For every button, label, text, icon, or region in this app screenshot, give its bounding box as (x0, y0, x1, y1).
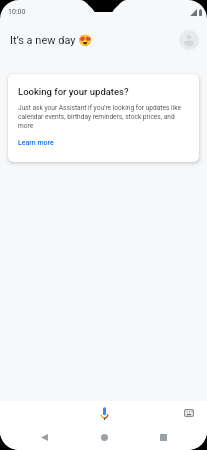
staticText: It’s a new day 😍 (10, 34, 92, 47)
button[interactable]: Assistant microphone (93, 402, 115, 424)
button[interactable]: Back (32, 425, 56, 449)
staticText: Looking for your updates? (18, 86, 129, 97)
button[interactable]: Keyboard (179, 403, 199, 423)
button[interactable]: Home (92, 425, 116, 449)
button[interactable]: Recent apps (151, 425, 175, 449)
button[interactable]: Looking for your updates? (8, 74, 199, 162)
staticText: Learn more (18, 139, 54, 147)
staticText: Just ask your Assistant if you’re lookin… (18, 104, 191, 130)
button[interactable]: Learn more (18, 139, 54, 147)
button[interactable]: Account (179, 30, 199, 50)
staticText: 10:00 (8, 8, 26, 16)
